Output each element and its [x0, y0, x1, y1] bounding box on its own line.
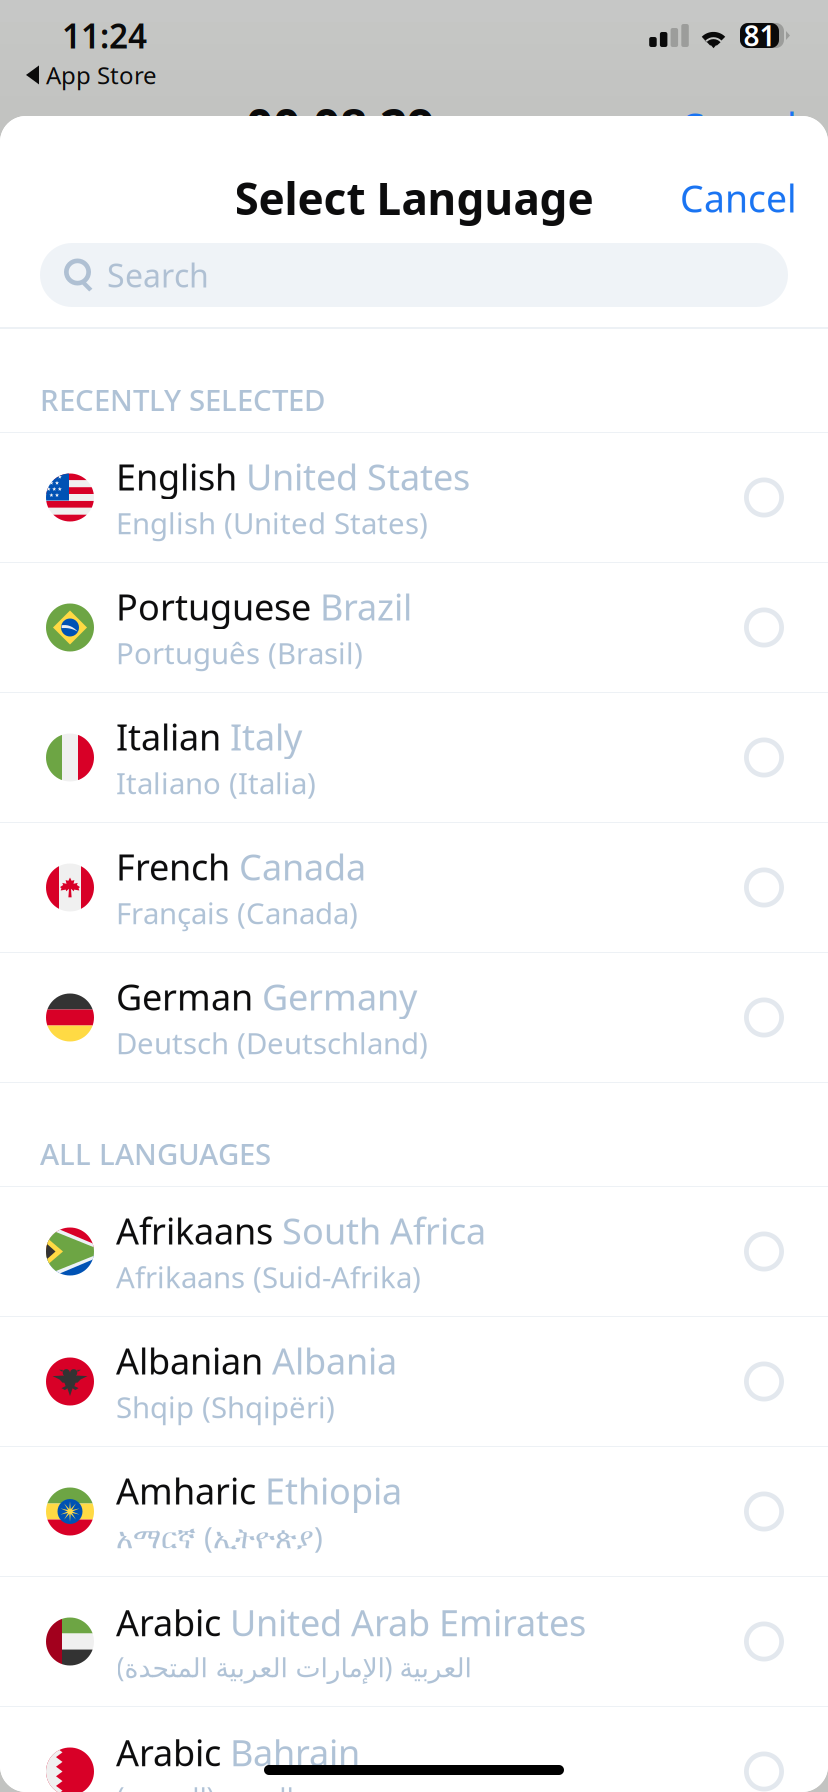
- staticText: South Africa: [273, 1207, 486, 1254]
- staticText: Afrikaans (Suid-Afrika): [116, 1257, 421, 1296]
- staticText: العربية (الإمارات العربية المتحدة): [116, 1649, 471, 1685]
- staticText: ALL LANGUAGES: [40, 1134, 271, 1173]
- staticText: Français (Canada): [116, 893, 358, 932]
- staticText: Arabic: [116, 1728, 221, 1776]
- staticText: Deutsch (Deutschland): [116, 1023, 428, 1062]
- staticText: አማርኛ (ኢትዮጵያ): [116, 1517, 323, 1556]
- staticText: Canada: [230, 843, 366, 890]
- staticText: 11:24: [62, 13, 147, 58]
- staticText: United Arab Emirates: [221, 1598, 586, 1646]
- staticText: RECENTLY SELECTED: [40, 380, 325, 419]
- button[interactable]: Cancel: [650, 153, 828, 243]
- staticText: العربية (البحرين): [116, 1779, 293, 1792]
- staticText: Select Language: [234, 169, 593, 227]
- staticText: German: [116, 973, 253, 1020]
- staticText: 81: [743, 17, 775, 54]
- staticText: French: [116, 843, 230, 890]
- staticText: Albanian: [116, 1337, 263, 1384]
- button[interactable]: Italian: [0, 693, 828, 823]
- staticText: 00:08:29: [246, 94, 434, 158]
- staticText: Português (Brasil): [116, 633, 363, 672]
- staticText: Search: [107, 254, 209, 296]
- button[interactable]: Amharic: [0, 1447, 828, 1577]
- button[interactable]: Afrikaans: [0, 1187, 828, 1317]
- staticText: Afrikaans: [116, 1207, 273, 1254]
- staticText: Bahrain: [221, 1728, 360, 1776]
- staticText: United States: [237, 453, 470, 500]
- button[interactable]: Arabic: [0, 1577, 828, 1707]
- staticText: English: [116, 453, 237, 500]
- button[interactable]: Albanian: [0, 1317, 828, 1447]
- staticText: Cancel: [680, 101, 797, 151]
- staticText: Arabic: [116, 1598, 221, 1646]
- staticText: Italiano (Italia): [116, 763, 316, 802]
- staticText: Italy: [221, 713, 302, 760]
- button[interactable]: German: [0, 953, 828, 1083]
- staticText: Brazil: [311, 583, 412, 630]
- staticText: Shqip (Shqipëri): [116, 1387, 335, 1426]
- staticText: Portuguese: [116, 583, 311, 630]
- button[interactable]: Arabic: [0, 1707, 828, 1792]
- staticText: Italian: [116, 713, 221, 760]
- staticText: English (United States): [116, 503, 428, 542]
- button[interactable]: French: [0, 823, 828, 953]
- staticText: Germany: [253, 973, 417, 1020]
- staticText: Amharic: [116, 1467, 256, 1514]
- staticText: Cancel: [680, 173, 797, 223]
- button[interactable]: English: [0, 433, 828, 563]
- staticText: Albania: [263, 1337, 397, 1384]
- staticText: App Store: [46, 59, 157, 91]
- button[interactable]: Portuguese: [0, 563, 828, 693]
- staticText: Ethiopia: [256, 1467, 402, 1514]
